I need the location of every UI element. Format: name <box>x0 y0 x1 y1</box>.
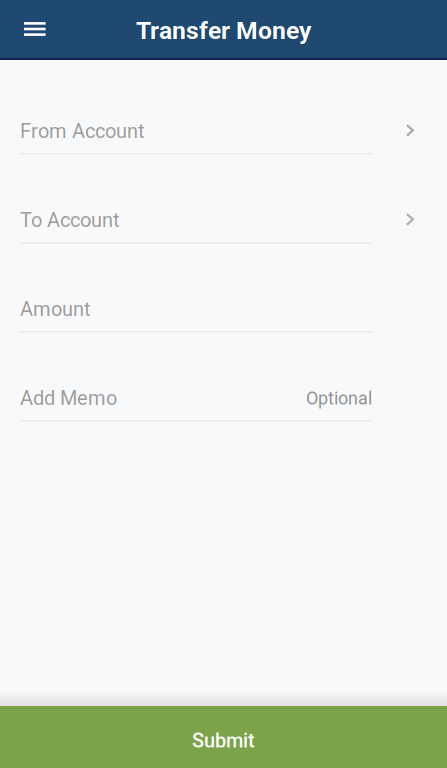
button[interactable]: Menu <box>0 0 64 58</box>
button[interactable]: From Account <box>20 111 447 155</box>
staticText: Submit <box>192 729 255 752</box>
staticText: To Account <box>20 209 120 232</box>
button[interactable]: To Account <box>20 200 447 244</box>
staticText: Add Memo <box>20 387 117 410</box>
staticText: From Account <box>20 120 145 143</box>
staticText: Transfer Money <box>136 16 311 45</box>
staticText: Optional <box>306 388 372 409</box>
button[interactable]: Amount <box>20 289 447 333</box>
button[interactable]: Add Memo <box>20 378 447 422</box>
staticText: Amount <box>20 298 91 321</box>
button[interactable]: Submit <box>0 706 447 768</box>
